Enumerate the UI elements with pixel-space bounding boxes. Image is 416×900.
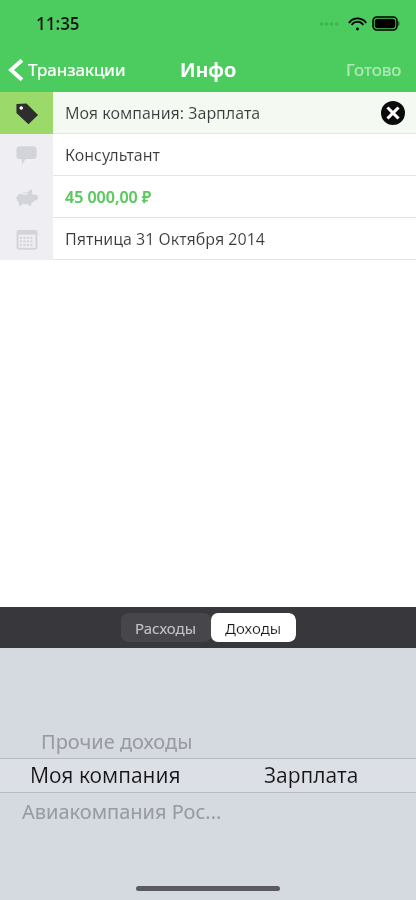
staticText: 45 000,00 ₽ xyxy=(65,186,152,208)
button[interactable]: 45 000,00 ₽ xyxy=(0,176,416,217)
staticText: Прочие доходы xyxy=(41,728,193,755)
staticText: Пятница 31 Октября 2014 xyxy=(65,228,265,250)
button[interactable]: Транзакции xyxy=(0,52,136,87)
staticText: Зарплата xyxy=(264,761,359,790)
button[interactable]: Консультант xyxy=(0,134,416,175)
button[interactable]: Моя компания xyxy=(0,758,416,793)
button[interactable]: Расходы xyxy=(121,613,211,642)
button[interactable]: Пятница 31 Октября 2014 xyxy=(0,218,416,259)
staticText: 11:35 xyxy=(36,12,80,35)
staticText: Моя компания: Зарплата xyxy=(65,102,261,124)
staticText: Авиакомпания Рос... xyxy=(22,798,222,825)
staticText: Транзакции xyxy=(28,58,126,81)
button[interactable]: Моя компания: Зарплата xyxy=(0,92,416,133)
staticText: Моя компания xyxy=(30,761,181,790)
staticText: Готово xyxy=(346,58,402,81)
button[interactable]: Очистить xyxy=(380,100,406,126)
button[interactable]: Готово xyxy=(332,50,416,89)
staticText: Консультант xyxy=(65,144,160,166)
staticText: Доходы xyxy=(225,618,282,638)
staticText: Инфо xyxy=(180,56,237,83)
button[interactable]: Доходы xyxy=(211,613,296,642)
staticText: Расходы xyxy=(135,618,197,638)
